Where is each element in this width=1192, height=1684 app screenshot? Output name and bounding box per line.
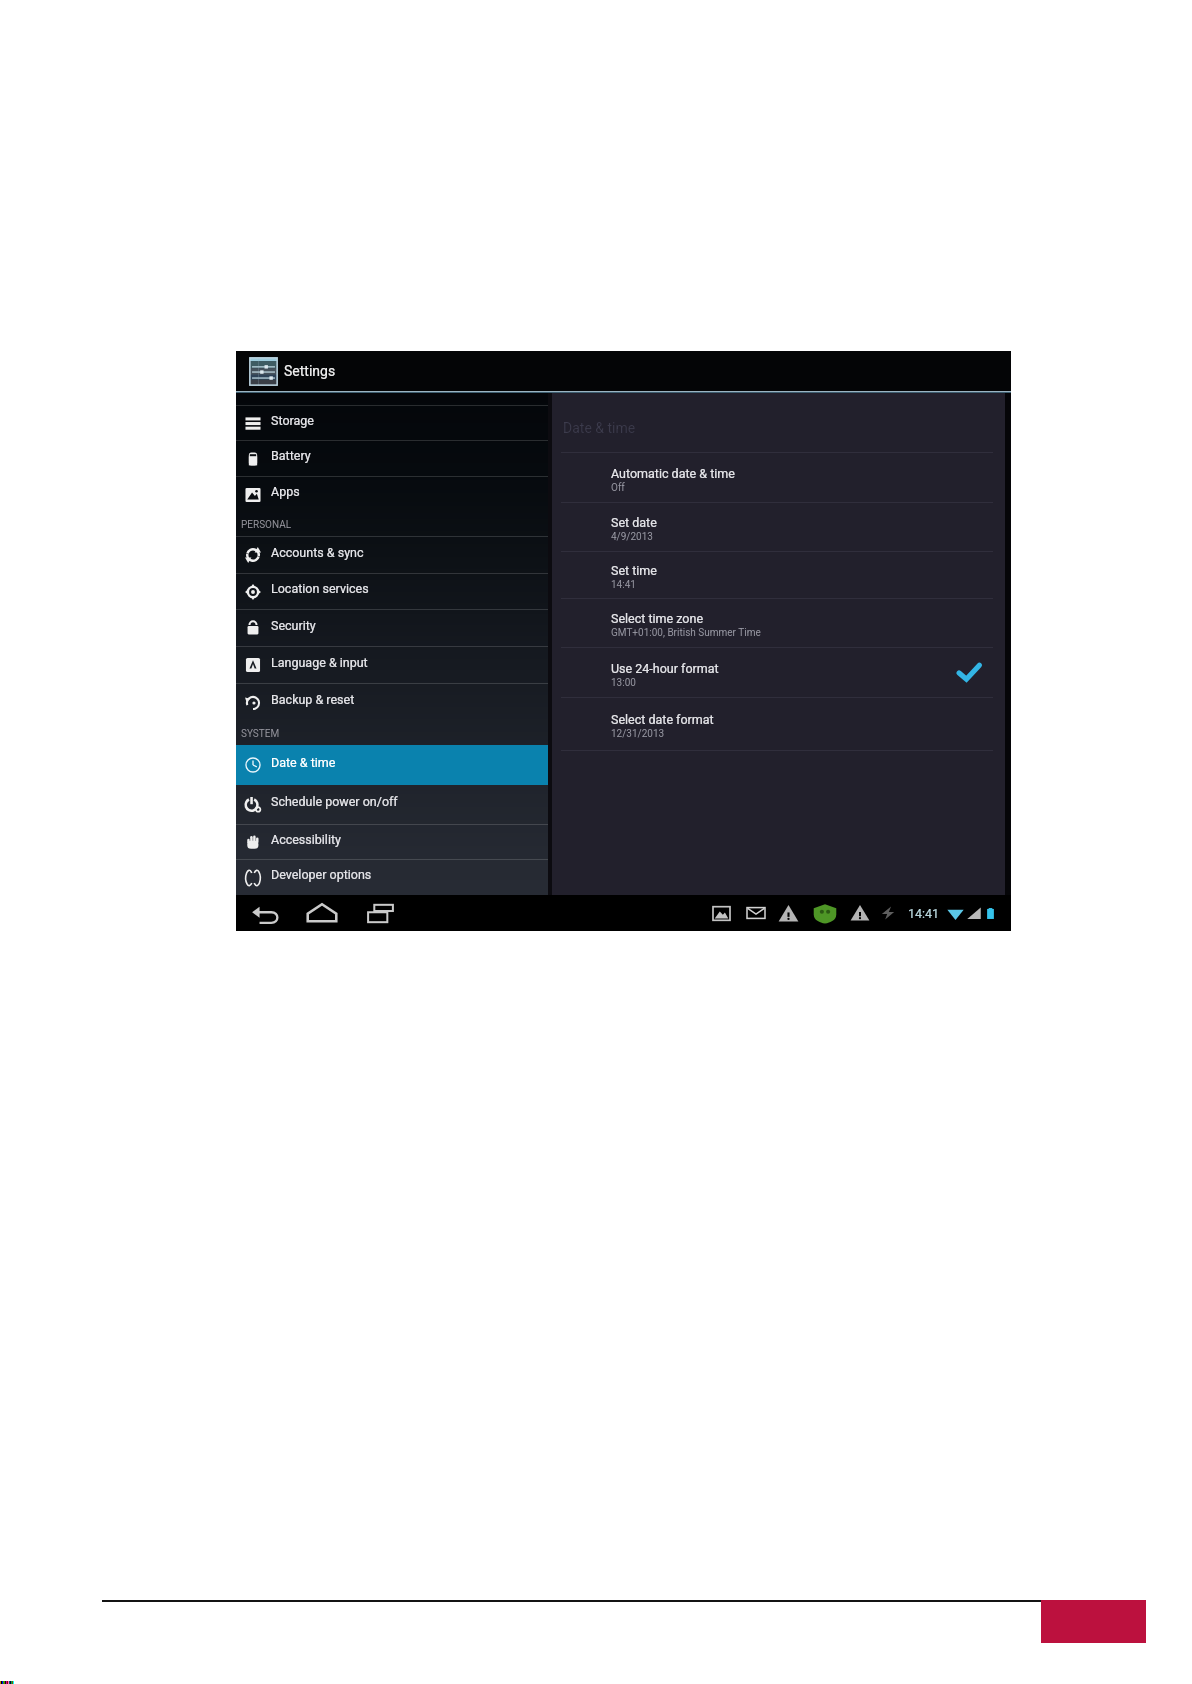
button[interactable]: Select time zone <box>552 599 1005 647</box>
staticText: 4/9/2013 <box>611 531 653 543</box>
staticText: PERSONAL <box>241 519 292 531</box>
button[interactable]: Date & time <box>236 745 548 785</box>
staticText: Date & time <box>563 420 636 436</box>
button[interactable]: Backup & reset <box>236 684 548 721</box>
staticText: Settings <box>284 363 336 379</box>
staticText: SYSTEM <box>241 728 280 740</box>
staticText: Accounts & sync <box>271 545 364 560</box>
button[interactable]: Select date format <box>552 698 1005 750</box>
staticText: 14:41 <box>611 579 636 591</box>
button[interactable]: Apps <box>236 477 548 512</box>
button[interactable]: Home <box>305 896 339 930</box>
staticText: Date & time <box>271 755 336 770</box>
button[interactable]: Location services <box>236 574 548 609</box>
staticText: Set date <box>611 515 657 530</box>
button[interactable]: Security <box>236 610 548 646</box>
button[interactable]: Settings <box>236 351 1011 391</box>
button[interactable]: Storage <box>236 406 548 440</box>
staticText: Schedule power on/off <box>271 794 398 809</box>
staticText: 14:41 <box>908 906 940 921</box>
staticText: Use 24-hour format <box>611 661 719 676</box>
staticText: Select time zone <box>611 611 704 626</box>
staticText: Automatic date & time <box>611 466 735 481</box>
staticText: 12/31/2013 <box>611 728 665 740</box>
button[interactable]: Back <box>247 896 281 930</box>
staticText: Security <box>271 618 316 633</box>
staticText: Off <box>611 482 625 494</box>
button[interactable]: Accessibility <box>236 825 548 859</box>
staticText: 13:00 <box>611 677 636 689</box>
staticText: Language & input <box>271 655 368 670</box>
button[interactable]: Set time <box>552 552 1005 598</box>
button[interactable]: Use 24-hour format <box>552 648 1005 697</box>
button[interactable]: Set date <box>552 503 1005 551</box>
staticText: Battery <box>271 448 311 463</box>
button[interactable]: Schedule power on/off <box>236 785 548 824</box>
staticText: Set time <box>611 563 657 578</box>
staticText: Backup & reset <box>271 692 355 707</box>
staticText: GMT+01:00, British Summer Time <box>611 627 761 639</box>
staticText: Developer options <box>271 867 372 882</box>
staticText: Storage <box>271 413 314 428</box>
button[interactable]: Battery <box>236 441 548 476</box>
staticText: Location services <box>271 581 369 596</box>
staticText: Apps <box>271 484 300 499</box>
button[interactable]: Accounts & sync <box>236 537 548 573</box>
button[interactable]: Automatic date & time <box>552 453 1005 502</box>
staticText: Select date format <box>611 712 714 727</box>
button[interactable]: Developer options <box>236 860 548 895</box>
button[interactable]: Recent apps <box>363 896 397 930</box>
button[interactable]: Language & input <box>236 647 548 683</box>
staticText: Accessibility <box>271 832 341 847</box>
